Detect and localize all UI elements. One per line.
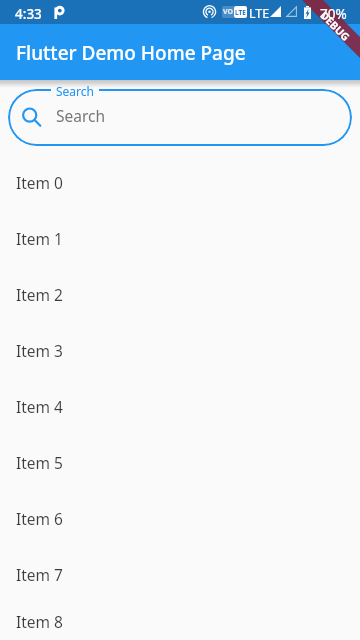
button[interactable]: Item 4 <box>0 378 360 434</box>
button[interactable]: Search <box>8 89 352 146</box>
staticText: Item 5 <box>16 452 63 473</box>
other: Pinterest <box>53 4 66 21</box>
staticText: Item 0 <box>16 172 63 193</box>
staticText: Item 2 <box>16 284 63 305</box>
button[interactable]: Item 8 <box>0 602 360 640</box>
button[interactable]: Item 2 <box>0 266 360 322</box>
staticText: Item 6 <box>16 508 63 529</box>
button[interactable]: Item 1 <box>0 210 360 266</box>
button[interactable]: Item 7 <box>0 546 360 602</box>
staticText: LTE <box>249 5 270 22</box>
staticText: Item 8 <box>16 611 63 632</box>
staticText: 70% <box>320 5 347 23</box>
staticText: Item 4 <box>16 396 63 417</box>
staticText: Search <box>56 83 94 99</box>
staticText: Search <box>56 105 106 126</box>
staticText: Item 1 <box>16 228 63 249</box>
staticText: 4:33 <box>15 5 42 23</box>
button[interactable]: Item 5 <box>0 434 360 490</box>
staticText: Item 7 <box>16 564 63 585</box>
button[interactable]: Item 3 <box>0 322 360 378</box>
button[interactable]: Item 6 <box>0 490 360 546</box>
staticText: VO <box>223 7 234 17</box>
staticText: Item 3 <box>16 340 63 361</box>
staticText: Flutter Demo Home Page <box>16 40 246 66</box>
staticText: LTE <box>235 8 246 17</box>
button[interactable]: Item 0 <box>0 154 360 210</box>
staticText: DEBUG <box>317 8 353 44</box>
